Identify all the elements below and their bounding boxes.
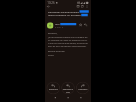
button[interactable]: Recent apps	[53, 95, 58, 100]
staticText: Il me faut une grande valeur, et serait …	[48, 42, 88, 45]
button[interactable]: Archive	[76, 4, 80, 9]
staticText: Transférer	[78, 88, 88, 91]
staticText: 10:26	[47, 1, 55, 5]
staticText: Bonne journée	[48, 49, 65, 53]
button[interactable]: Back	[46, 4, 51, 9]
staticText: Répondre à tous	[63, 88, 73, 93]
button[interactable]: Répondre à tous	[61, 82, 75, 94]
button[interactable]: Reply	[83, 23, 88, 27]
button[interactable]: Home	[65, 95, 70, 100]
staticText: Demandes exceptionnelles	[48, 10, 79, 13]
button[interactable]: Sender avatar	[47, 22, 53, 29]
staticText: Minitu chargeur PC portable	[48, 13, 81, 17]
button[interactable]: Back	[78, 95, 83, 100]
staticText: moi	[55, 22, 59, 26]
staticText: PC portable HP dans un projet en cours.	[48, 39, 87, 42]
staticText: J'ai de nouveau besoin d'un chargeur de	[48, 36, 87, 39]
staticText: Répondre	[49, 88, 58, 91]
button[interactable]: Delete	[80, 4, 85, 9]
button[interactable]: Star	[78, 23, 83, 27]
button[interactable]: Transférer	[76, 82, 89, 94]
staticText: à moi	[55, 26, 61, 29]
staticText: Salut	[48, 53, 54, 57]
button[interactable]: More options	[85, 4, 89, 8]
staticText: plus en plus de meilleur fonctionnalité.	[48, 45, 86, 48]
staticText: Bonjour,	[48, 31, 57, 35]
button[interactable]: Répondre	[46, 82, 60, 94]
